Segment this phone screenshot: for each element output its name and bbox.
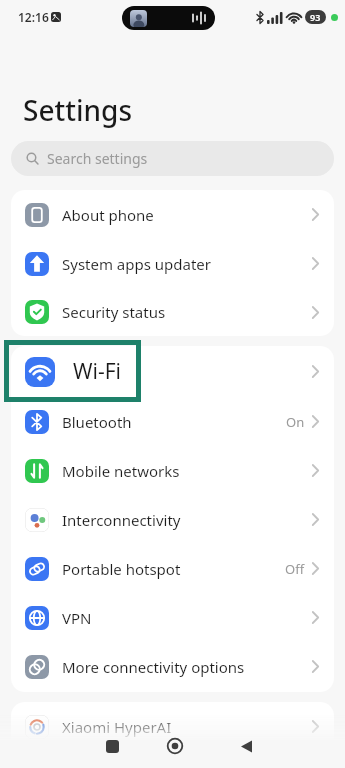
button[interactable]: Portable hotspot: [11, 544, 334, 593]
button[interactable]: About phone: [11, 190, 334, 239]
staticText: On: [286, 413, 305, 431]
staticText: Search settings: [47, 149, 148, 168]
button[interactable]: Bluetooth: [11, 397, 334, 446]
staticText: Security status: [62, 302, 312, 322]
button[interactable]: Wi-Fi: [11, 346, 334, 397]
button[interactable]: [163, 734, 187, 758]
staticText: Interconnectivity: [62, 510, 312, 530]
button[interactable]: Security status: [11, 288, 334, 336]
staticText: VPN: [62, 608, 312, 628]
staticText: Bluetooth: [62, 412, 286, 432]
button[interactable]: More connectivity options: [11, 642, 334, 691]
button[interactable]: VPN: [11, 593, 334, 642]
staticText: Wi-Fi: [73, 357, 312, 386]
staticText: Portable hotspot: [62, 559, 285, 579]
button[interactable]: Mobile networks: [11, 446, 334, 495]
button[interactable]: System apps updater: [11, 239, 334, 288]
button[interactable]: Xiaomi HyperAI: [11, 702, 334, 751]
staticText: More connectivity options: [62, 657, 312, 677]
button[interactable]: [100, 734, 124, 758]
staticText: Settings: [23, 91, 133, 129]
staticText: 12:16: [18, 9, 49, 25]
staticText: Xiaomi HyperAI: [62, 717, 312, 737]
staticText: About phone: [62, 205, 312, 225]
staticText: System apps updater: [62, 254, 312, 274]
staticText: 93: [310, 11, 321, 23]
button[interactable]: Interconnectivity: [11, 495, 334, 544]
staticText: Mobile networks: [62, 461, 312, 481]
button[interactable]: Search settings: [11, 141, 334, 176]
button[interactable]: [234, 734, 258, 758]
staticText: Off: [285, 560, 305, 578]
